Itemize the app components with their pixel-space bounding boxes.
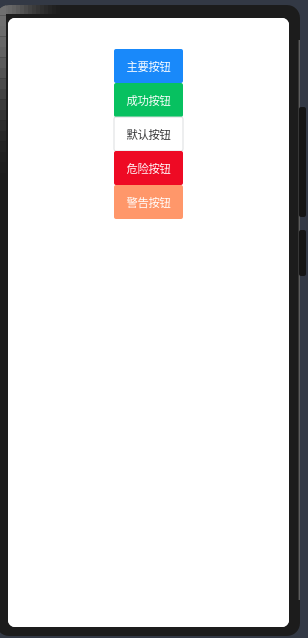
- button[interactable]: 默认按钮: [114, 117, 183, 151]
- staticText: 成功按钮: [126, 92, 170, 108]
- button[interactable]: 成功按钮: [114, 83, 183, 117]
- staticText: 主要按钮: [126, 58, 170, 74]
- button[interactable]: 危险按钮: [114, 151, 183, 185]
- button[interactable]: 警告按钮: [114, 185, 183, 219]
- staticText: 默认按钮: [126, 126, 170, 142]
- staticText: 危险按钮: [126, 160, 170, 176]
- button[interactable]: 主要按钮: [114, 49, 183, 83]
- staticText: 警告按钮: [126, 194, 170, 210]
